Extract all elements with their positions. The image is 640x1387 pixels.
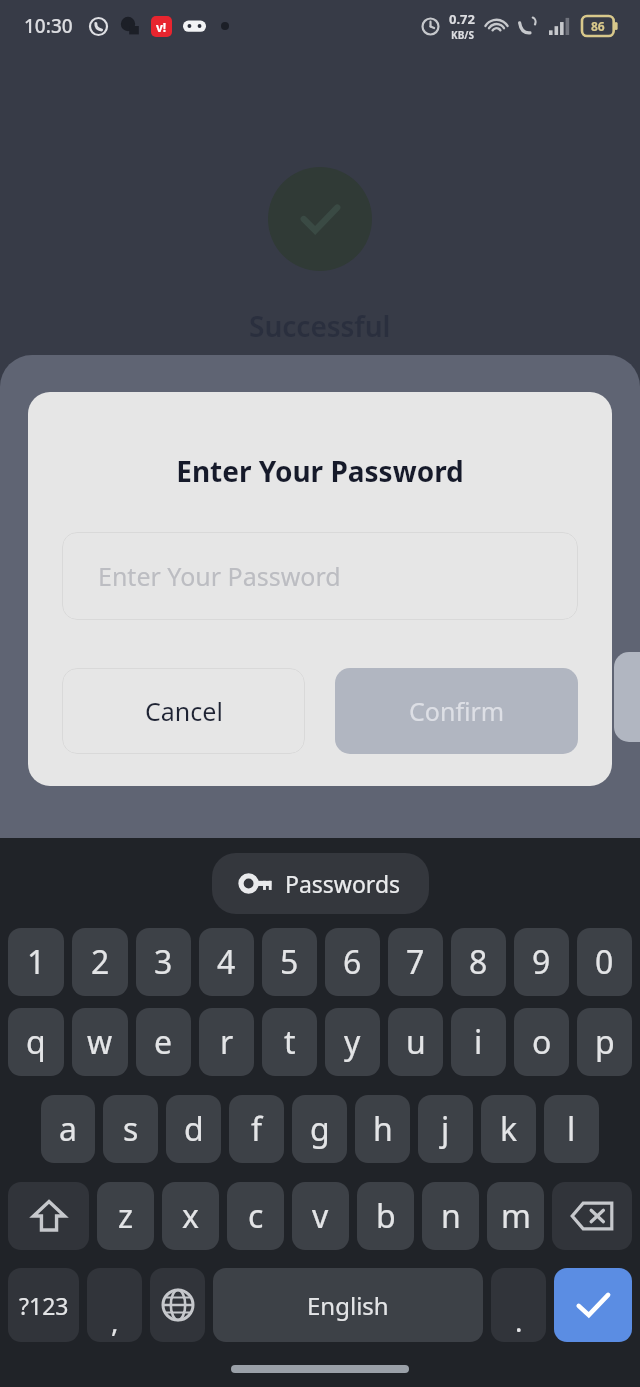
button[interactable]: 1: [8, 928, 64, 996]
staticText: ,: [111, 1302, 119, 1340]
staticText: Enter Your Password: [176, 452, 464, 490]
staticText: s: [123, 1107, 139, 1151]
button[interactable]: c: [227, 1182, 284, 1250]
button[interactable]: Cancel: [62, 668, 305, 754]
staticText: Cancel: [145, 694, 223, 728]
button[interactable]: h: [355, 1095, 410, 1163]
staticText: 5: [280, 940, 299, 984]
staticText: 2: [91, 940, 110, 984]
button[interactable]: d: [166, 1095, 221, 1163]
staticText: 7: [406, 940, 425, 984]
staticText: z: [118, 1194, 134, 1238]
staticText: m: [501, 1194, 531, 1238]
button[interactable]: o: [514, 1008, 569, 1076]
staticText: .: [515, 1302, 523, 1340]
button[interactable]: m: [487, 1182, 544, 1250]
button[interactable]: Backspace: [552, 1182, 632, 1250]
button[interactable]: 6: [325, 928, 380, 996]
button[interactable]: j: [418, 1095, 473, 1163]
button[interactable]: 5: [262, 928, 317, 996]
staticText: KB/S: [451, 28, 474, 42]
staticText: 86: [591, 18, 605, 34]
staticText: v!: [156, 19, 167, 35]
staticText: v: [312, 1194, 329, 1238]
button[interactable]: Enter Your Password: [62, 532, 578, 620]
staticText: w: [87, 1020, 113, 1064]
button[interactable]: y: [325, 1008, 380, 1076]
staticText: p: [595, 1020, 615, 1064]
staticText: t: [284, 1020, 296, 1064]
staticText: q: [26, 1020, 46, 1064]
staticText: h: [373, 1107, 393, 1151]
staticText: l: [567, 1107, 576, 1151]
button[interactable]: 3: [136, 928, 191, 996]
staticText: k: [500, 1107, 518, 1151]
button[interactable]: 9: [514, 928, 569, 996]
staticText: 8: [469, 940, 488, 984]
staticText: English: [307, 1289, 389, 1322]
button[interactable]: q: [8, 1008, 64, 1076]
staticText: 0.72: [449, 10, 475, 28]
staticText: eGiLe5966): [263, 785, 378, 815]
button[interactable]: 2: [72, 928, 128, 996]
button[interactable]: l: [544, 1095, 599, 1163]
button[interactable]: 7: [388, 928, 443, 996]
staticText: e: [154, 1020, 173, 1064]
button[interactable]: w: [72, 1008, 128, 1076]
button[interactable]: 0: [577, 928, 632, 996]
staticText: (TQUXYHWgQP8M4kgj814bgua: [158, 749, 483, 779]
staticText: o: [532, 1020, 552, 1064]
button[interactable]: f: [229, 1095, 284, 1163]
staticText: y: [344, 1020, 361, 1064]
staticText: r: [220, 1020, 234, 1064]
button[interactable]: Switch language: [150, 1268, 205, 1342]
staticText: g: [310, 1107, 330, 1151]
staticText: 3: [154, 940, 173, 984]
button[interactable]: n: [422, 1182, 479, 1250]
staticText: 10:30: [24, 13, 73, 39]
staticText: ?123: [19, 1290, 69, 1321]
staticText: 1: [27, 940, 46, 984]
staticText: 4: [217, 940, 236, 984]
button[interactable]: p: [577, 1008, 632, 1076]
button[interactable]: Shift: [8, 1182, 89, 1250]
staticText: f: [251, 1107, 263, 1151]
button[interactable]: i: [451, 1008, 506, 1076]
staticText: j: [441, 1107, 450, 1151]
staticText: 9: [532, 940, 551, 984]
button[interactable]: g: [292, 1095, 347, 1163]
button[interactable]: u: [388, 1008, 443, 1076]
staticText: Passwords: [285, 868, 401, 899]
button[interactable]: v: [292, 1182, 349, 1250]
staticText: i: [474, 1020, 483, 1064]
staticText: x: [182, 1194, 199, 1238]
staticText: u: [406, 1020, 426, 1064]
button[interactable]: ?123: [8, 1268, 79, 1342]
staticText: b: [376, 1194, 396, 1238]
button[interactable]: Confirm: [335, 668, 578, 754]
staticText: a: [59, 1107, 77, 1151]
button[interactable]: x: [162, 1182, 219, 1250]
staticText: d: [184, 1107, 204, 1151]
button[interactable]: r: [199, 1008, 254, 1076]
button[interactable]: English: [213, 1268, 483, 1342]
staticText: Enter Your Password: [98, 559, 341, 593]
button[interactable]: e: [136, 1008, 191, 1076]
button[interactable]: 8: [451, 928, 506, 996]
button[interactable]: b: [357, 1182, 414, 1250]
staticText: n: [441, 1194, 461, 1238]
button[interactable]: 4: [199, 928, 254, 996]
button[interactable]: Enter: [554, 1268, 632, 1342]
button[interactable]: s: [103, 1095, 158, 1163]
button[interactable]: .: [491, 1268, 546, 1342]
staticText: Successful: [249, 307, 391, 345]
button[interactable]: k: [481, 1095, 536, 1163]
staticText: Confirm: [409, 694, 505, 728]
button[interactable]: z: [97, 1182, 154, 1250]
staticText: 6: [343, 940, 362, 984]
staticText: c: [248, 1194, 264, 1238]
button[interactable]: a: [41, 1095, 95, 1163]
button[interactable]: ,: [87, 1268, 142, 1342]
button[interactable]: Passwords: [212, 853, 429, 914]
button[interactable]: t: [262, 1008, 317, 1076]
